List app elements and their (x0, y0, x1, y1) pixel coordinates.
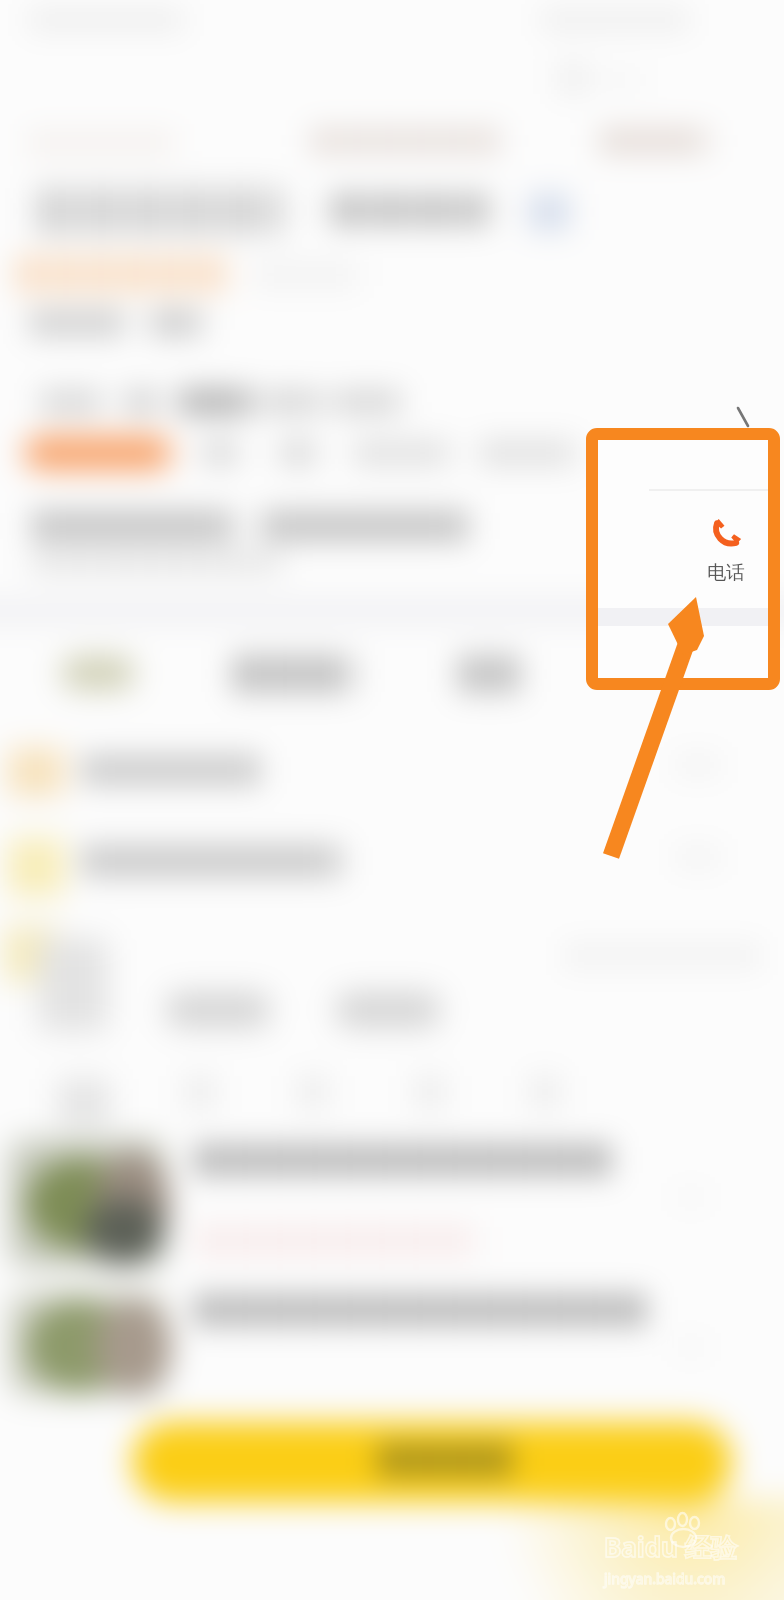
button[interactable]: 评价 1 (8, 1138, 768, 1278)
button[interactable]: 筛选 1 (160, 986, 276, 1032)
button[interactable]: 电话 (695, 517, 757, 585)
staticText: 电话 (707, 561, 745, 585)
button[interactable]: 推荐 标签页 (52, 648, 148, 698)
button[interactable]: 列表项 2 (0, 832, 740, 900)
button[interactable]: 立即预订 (132, 1422, 732, 1502)
button[interactable]: 优惠标签 (24, 430, 184, 476)
button[interactable]: 评价 2 (8, 1288, 768, 1400)
staticText: Baidu 经验 (604, 1529, 737, 1565)
button[interactable]: 图片 标签页 (452, 648, 528, 698)
staticText: jingyan.baidu.com (604, 1569, 726, 1588)
button[interactable]: 列表项 1 (0, 740, 740, 806)
button[interactable]: 列表项 3 (0, 920, 740, 990)
button[interactable]: 筛选 2 (330, 986, 446, 1032)
button[interactable]: 全部评价 标签页 (228, 648, 358, 698)
